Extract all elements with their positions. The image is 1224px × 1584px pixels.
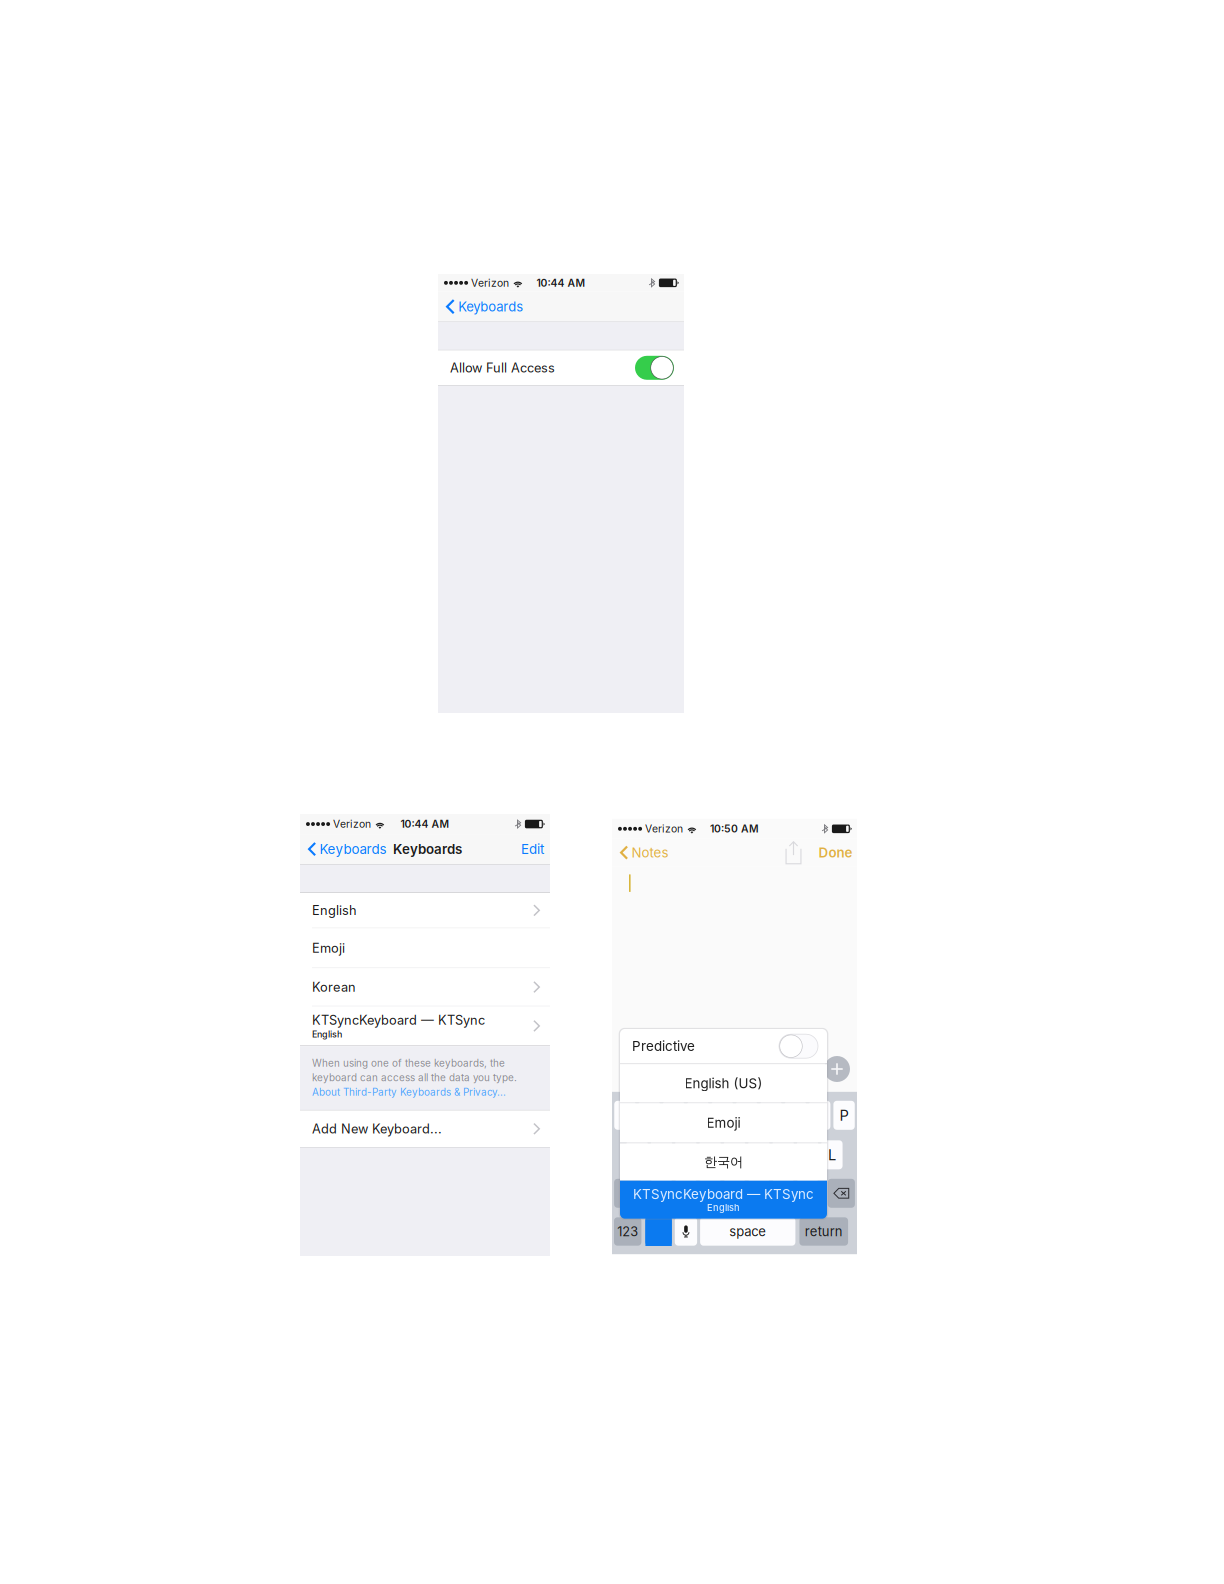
staticText: V [729, 1184, 739, 1202]
button[interactable]: O [809, 1101, 830, 1130]
staticText: Emoji [706, 1115, 740, 1131]
staticText: Emoji [312, 940, 345, 956]
staticText: keyboard can access all the data you typ… [312, 1072, 517, 1084]
button[interactable]: space [700, 1217, 795, 1246]
staticText: Z [657, 1184, 666, 1202]
button[interactable]: Dictation [675, 1217, 697, 1246]
button[interactable]: KTSyncKeyboard — KTSync [300, 1006, 550, 1045]
button[interactable]: 한국어 [620, 1143, 827, 1181]
staticText: Keyboards [319, 841, 386, 857]
staticText: Done [818, 844, 852, 861]
staticText: X [681, 1184, 691, 1202]
button[interactable]: L [821, 1140, 843, 1169]
button[interactable]: 123 [614, 1217, 641, 1246]
button[interactable]: Emoji [300, 928, 550, 968]
staticText: 10:50 AM [710, 822, 759, 835]
staticText: L [828, 1146, 836, 1164]
button[interactable]: KTSyncKeyboard — KTSync [620, 1181, 827, 1219]
staticText: C [705, 1184, 716, 1202]
staticText: English [707, 1202, 740, 1213]
button[interactable]: C [699, 1179, 721, 1208]
staticText: Keyboards [393, 841, 462, 857]
button[interactable]: Done [818, 839, 857, 866]
button[interactable]: M [797, 1179, 818, 1208]
staticText: Keyboards [458, 299, 523, 314]
button[interactable]: K [797, 1140, 818, 1169]
staticText: 123 [617, 1224, 638, 1239]
button[interactable]: V [724, 1179, 745, 1208]
staticText: About Third-Party Keyboards & Privacy... [312, 1086, 506, 1098]
button[interactable]: English [300, 893, 550, 928]
staticText: When using one of these keyboards, the [312, 1057, 505, 1069]
button[interactable]: N [772, 1179, 794, 1208]
staticText: Notes [631, 844, 668, 861]
button[interactable]: B [748, 1179, 770, 1208]
button[interactable]: Z [651, 1179, 672, 1208]
button[interactable]: A [626, 1140, 648, 1169]
staticText: Korean [312, 979, 356, 995]
staticText: Predictive [632, 1038, 695, 1054]
button[interactable]: Predictive [779, 1034, 818, 1058]
staticText: Add New Keyboard... [312, 1121, 442, 1137]
button[interactable]: About Third-Party Keyboards & Privacy... [312, 1086, 506, 1098]
staticText: Verizon [333, 818, 371, 830]
button[interactable]: W [639, 1101, 660, 1130]
button[interactable]: Edit [521, 834, 550, 864]
staticText: G [729, 1146, 740, 1164]
staticText: N [778, 1184, 789, 1202]
button[interactable]: Add New Keyboard... [300, 1111, 550, 1147]
button[interactable]: Emoji [620, 1103, 827, 1143]
button[interactable]: Delete [828, 1179, 855, 1208]
button[interactable]: Shift [614, 1179, 641, 1208]
staticText: 10:44 AM [400, 818, 449, 830]
staticText: KTSyncKeyboard — KTSync [633, 1186, 814, 1202]
button[interactable]: E [663, 1101, 684, 1130]
button[interactable]: Y [736, 1101, 757, 1130]
staticText: Allow Full Access [450, 360, 555, 376]
staticText: T [718, 1106, 727, 1124]
button[interactable]: D [675, 1140, 696, 1169]
staticText: English (US) [684, 1075, 762, 1091]
button[interactable]: I [785, 1101, 806, 1130]
staticText: space [729, 1224, 766, 1239]
staticText: KTSyncKeyboard — KTSync [312, 1012, 485, 1028]
button[interactable]: return [799, 1217, 848, 1246]
button[interactable]: Allow Full Access [635, 356, 674, 380]
button[interactable]: J [772, 1140, 794, 1169]
button[interactable]: Q [614, 1101, 636, 1130]
button[interactable]: R [687, 1101, 709, 1130]
staticText: Edit [521, 841, 544, 857]
button[interactable]: Keyboards [300, 834, 386, 864]
staticText: 10:44 AM [536, 277, 585, 289]
staticText: M [801, 1184, 814, 1202]
button[interactable]: G [724, 1140, 745, 1169]
button[interactable]: U [760, 1101, 782, 1130]
button[interactable]: S [651, 1140, 672, 1169]
button[interactable]: Korean [300, 968, 550, 1006]
staticText: return [805, 1224, 843, 1239]
button[interactable]: F [699, 1140, 721, 1169]
button[interactable]: H [748, 1140, 770, 1169]
button[interactable]: X [675, 1179, 696, 1208]
button[interactable]: P [833, 1101, 855, 1130]
button[interactable]: Next keyboard [645, 1217, 672, 1246]
button[interactable]: T [712, 1101, 733, 1130]
staticText: Verizon [471, 277, 509, 289]
button[interactable]: Keyboards [438, 292, 684, 322]
button[interactable]: Share [782, 839, 804, 866]
staticText: P [840, 1106, 849, 1124]
button[interactable]: Notes [612, 839, 668, 866]
button[interactable]: English (US) [620, 1064, 827, 1102]
